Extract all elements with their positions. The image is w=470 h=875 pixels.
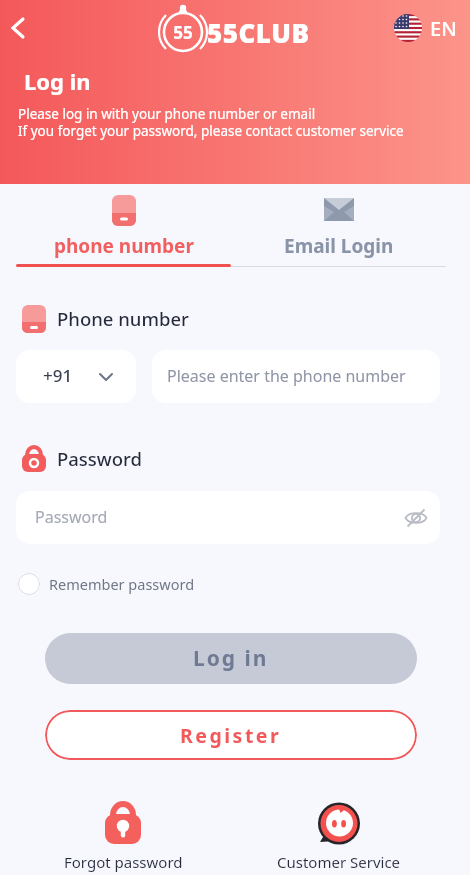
button[interactable]: Email Login	[231, 184, 446, 268]
staticText: 55	[169, 21, 197, 44]
button[interactable]: Please enter the phone number	[152, 350, 440, 403]
staticText: Password	[35, 506, 108, 528]
button[interactable]: Password	[16, 491, 440, 544]
button[interactable]: Log in	[45, 633, 417, 684]
button[interactable]: Remember password	[16, 570, 195, 598]
button[interactable]: Forgot password	[43, 790, 203, 875]
staticText: If you forget your password, please cont…	[18, 122, 404, 140]
button[interactable]	[404, 506, 428, 530]
staticText: Please enter the phone number	[167, 365, 406, 387]
button[interactable]: +91	[16, 350, 136, 403]
staticText: Log in	[24, 66, 91, 96]
button[interactable]: Register	[45, 710, 417, 760]
staticText: Forgot password	[64, 852, 183, 872]
button[interactable]: phone number	[16, 184, 231, 268]
button[interactable]: EN	[392, 12, 462, 44]
button[interactable]	[4, 12, 36, 44]
staticText: Password	[57, 446, 143, 471]
staticText: +91	[43, 364, 73, 387]
staticText: Customer Service	[277, 852, 401, 872]
staticText: Remember password	[49, 574, 195, 594]
staticText: Register	[180, 722, 282, 749]
staticText: EN	[430, 15, 457, 42]
staticText: Log in	[193, 644, 269, 673]
staticText: phone number	[54, 233, 194, 259]
staticText: 55CLUB	[207, 15, 310, 50]
staticText: Phone number	[57, 306, 189, 331]
button[interactable]: Customer Service	[259, 790, 419, 875]
staticText: Please log in with your phone number or …	[18, 105, 316, 123]
staticText: Email Login	[284, 233, 394, 259]
